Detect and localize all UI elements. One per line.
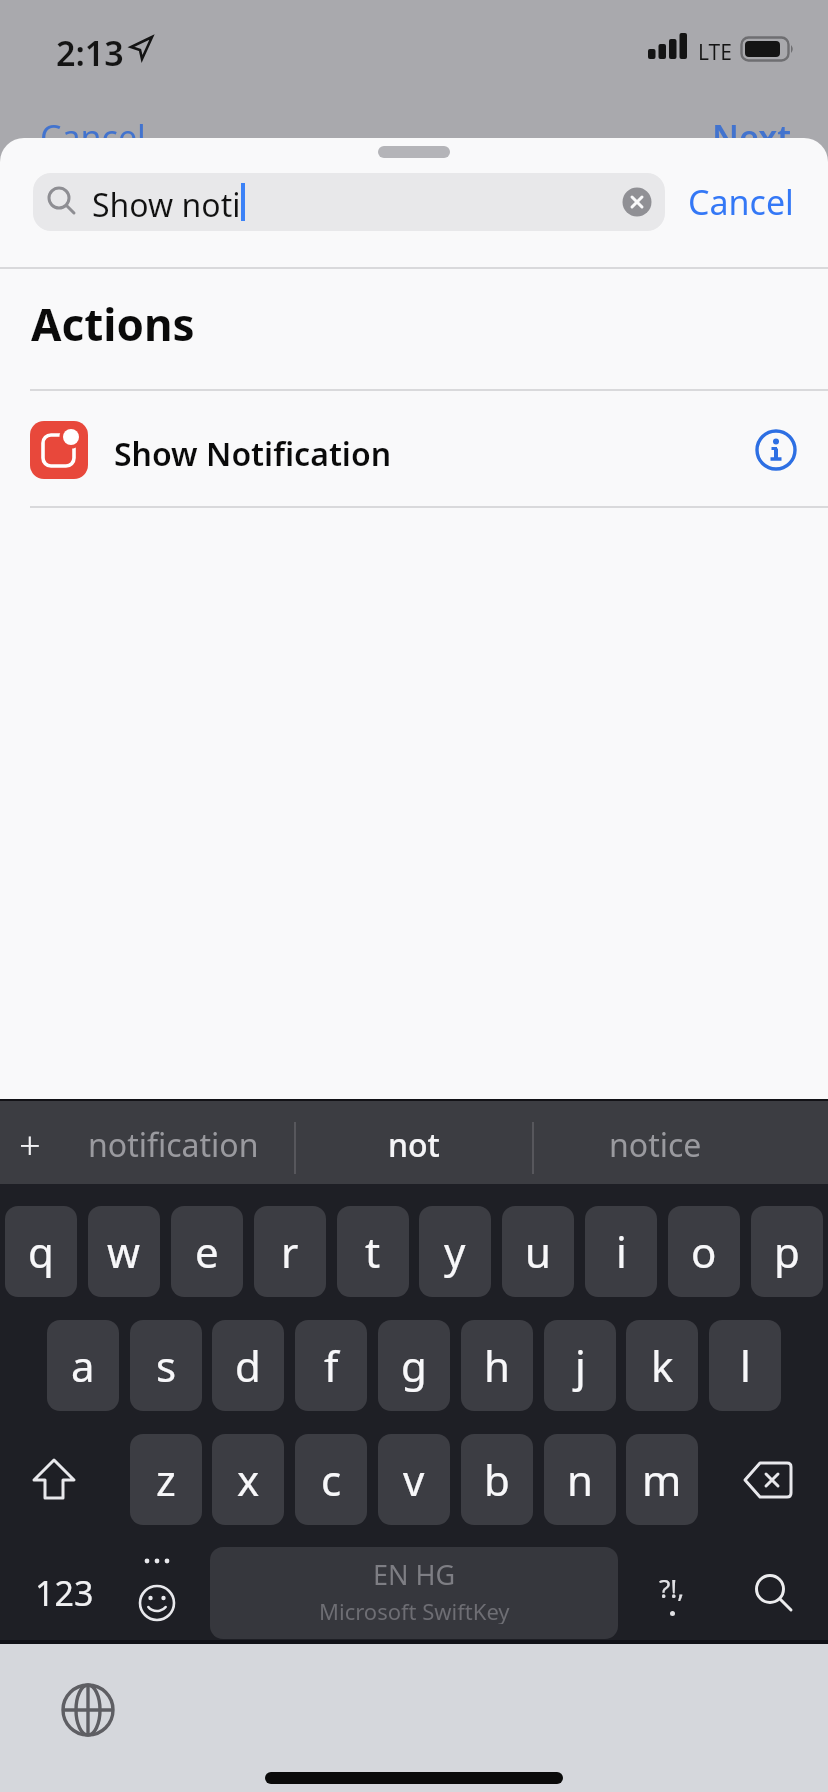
button[interactable] xyxy=(722,1434,814,1525)
staticText: p xyxy=(774,1223,800,1280)
button[interactable]: notice xyxy=(534,1101,776,1189)
staticText: w xyxy=(107,1223,141,1280)
button[interactable]: ?!, xyxy=(632,1547,712,1639)
staticText: Show Notification xyxy=(114,432,392,476)
button[interactable]: b xyxy=(461,1434,533,1525)
staticText: j xyxy=(575,1337,586,1394)
staticText: f xyxy=(324,1337,339,1394)
button[interactable]: e xyxy=(171,1206,243,1297)
button[interactable]: k xyxy=(626,1320,698,1411)
button[interactable]: g xyxy=(378,1320,450,1411)
staticText: + xyxy=(19,1119,41,1171)
staticText: u xyxy=(525,1223,551,1280)
button[interactable]: p xyxy=(751,1206,823,1297)
button[interactable]: c xyxy=(295,1434,367,1525)
button[interactable] xyxy=(8,1434,100,1525)
button[interactable]: x xyxy=(212,1434,284,1525)
staticText: Show noti xyxy=(92,183,241,227)
staticText: d xyxy=(235,1337,261,1394)
staticText: h xyxy=(484,1337,510,1394)
button[interactable]: t xyxy=(337,1206,409,1297)
staticText: not xyxy=(388,1123,440,1167)
button[interactable]: r xyxy=(254,1206,326,1297)
button[interactable] xyxy=(33,173,665,231)
staticText: m xyxy=(642,1451,682,1508)
button[interactable] xyxy=(728,1547,820,1639)
button[interactable]: a xyxy=(47,1320,119,1411)
button[interactable]: o xyxy=(668,1206,740,1297)
staticText: Actions xyxy=(31,294,195,354)
staticText: i xyxy=(616,1223,627,1280)
button[interactable] xyxy=(120,1547,194,1639)
button[interactable]: v xyxy=(378,1434,450,1525)
button[interactable]: m xyxy=(626,1434,698,1525)
staticText: Next xyxy=(712,114,792,160)
button[interactable]: Show Notification xyxy=(0,391,828,507)
staticText: b xyxy=(484,1451,510,1508)
staticText: LTE xyxy=(698,38,732,67)
button[interactable] xyxy=(622,187,652,217)
button[interactable]: q xyxy=(5,1206,77,1297)
button[interactable]: i xyxy=(585,1206,657,1297)
staticText: z xyxy=(156,1451,176,1508)
staticText: o xyxy=(691,1223,717,1280)
staticText: s xyxy=(156,1337,177,1394)
button[interactable]: Cancel xyxy=(683,173,798,231)
button[interactable] xyxy=(58,1680,118,1740)
button[interactable]: j xyxy=(544,1320,616,1411)
button[interactable] xyxy=(210,1547,618,1639)
staticText: Microsoft SwiftKey xyxy=(319,1596,510,1624)
staticText: g xyxy=(401,1337,427,1394)
button[interactable]: l xyxy=(709,1320,781,1411)
staticText: Cancel xyxy=(40,114,146,160)
button[interactable]: u xyxy=(502,1206,574,1297)
staticText: 123 xyxy=(35,1570,94,1616)
button[interactable]: s xyxy=(130,1320,202,1411)
staticText: n xyxy=(567,1451,593,1508)
staticText: r xyxy=(281,1223,299,1280)
button[interactable]: h xyxy=(461,1320,533,1411)
staticText: ?!, xyxy=(659,1570,685,1605)
button[interactable]: n xyxy=(544,1434,616,1525)
staticText: x xyxy=(237,1451,260,1508)
button[interactable]: 123 xyxy=(22,1547,106,1639)
staticText: a xyxy=(71,1337,95,1394)
staticText: Cancel xyxy=(688,179,794,225)
staticText: t xyxy=(365,1223,381,1280)
staticText: 2:13 xyxy=(56,30,124,76)
button[interactable]: f xyxy=(295,1320,367,1411)
button[interactable]: w xyxy=(88,1206,160,1297)
staticText: EN HG xyxy=(373,1556,456,1590)
button[interactable]: y xyxy=(419,1206,491,1297)
button[interactable]: notification xyxy=(52,1101,294,1189)
staticText: q xyxy=(28,1223,54,1280)
button[interactable]: d xyxy=(212,1320,284,1411)
staticText: e xyxy=(195,1223,219,1280)
button[interactable]: not xyxy=(296,1101,532,1189)
staticText: l xyxy=(740,1337,751,1394)
staticText: c xyxy=(321,1451,342,1508)
staticText: notification xyxy=(88,1123,259,1167)
staticText: y xyxy=(444,1223,466,1280)
button[interactable]: + xyxy=(8,1101,52,1189)
staticText: v xyxy=(403,1451,425,1508)
staticText: k xyxy=(651,1337,674,1394)
staticText: notice xyxy=(609,1123,702,1167)
button[interactable]: z xyxy=(130,1434,202,1525)
